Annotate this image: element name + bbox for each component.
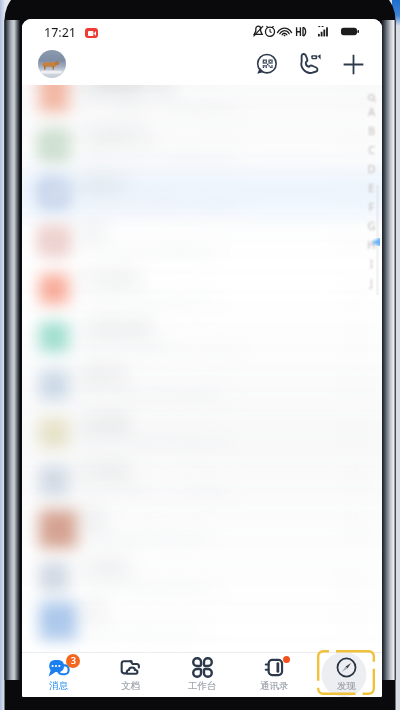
staticText: 文档 <box>121 680 140 692</box>
staticText: 通讯录 <box>260 680 289 692</box>
staticText: 3 <box>71 655 76 667</box>
button[interactable]: 发现 <box>310 652 382 697</box>
staticText: J <box>365 276 378 295</box>
staticText: I <box>365 257 378 276</box>
staticText: 发现 <box>337 680 356 692</box>
staticText: 消息 <box>49 680 68 692</box>
button[interactable]: 文档 <box>94 652 166 697</box>
button[interactable]: 公告通知 <box>22 553 382 601</box>
staticText: 17:21 <box>44 24 77 41</box>
button[interactable]: 审批助手 <box>22 361 382 409</box>
staticText: 会议纪要已经整理好发群里了 <box>79 625 209 638</box>
button[interactable]: 项目交流群（12） <box>22 85 382 121</box>
staticText: 稍后我回复您具体的内容好吗 <box>79 533 209 546</box>
staticText: 项目交流群（12） <box>79 85 181 97</box>
button[interactable]: Add <box>341 52 365 76</box>
staticText: D <box>365 162 378 181</box>
button[interactable]: Scan QR code <box>254 52 278 76</box>
staticText: 王强 <box>79 604 104 620</box>
staticText: F <box>365 200 378 219</box>
staticText: E <box>365 181 378 200</box>
staticText: C <box>365 143 378 162</box>
button[interactable]: Video call <box>298 52 322 76</box>
staticText: B <box>365 124 378 143</box>
staticText: A <box>365 105 378 124</box>
button[interactable]: 客户联系 <box>22 457 382 505</box>
staticText: 李娜 <box>79 512 104 528</box>
button[interactable]: 企业微信团队 <box>22 313 382 361</box>
button[interactable]: 张伟 <box>22 217 382 265</box>
button[interactable]: 产品研发中心 <box>22 121 382 169</box>
staticText: G <box>365 219 378 238</box>
button[interactable]: 通讯录 <box>238 652 310 697</box>
button[interactable]: Profile <box>38 50 66 78</box>
button[interactable]: 客户服务群 <box>22 265 382 313</box>
button[interactable]: 李娜 <box>22 505 382 553</box>
staticText: 工作台 <box>188 680 217 692</box>
button[interactable]: 日程提醒 <box>22 409 382 457</box>
button[interactable]: 标签助手 <box>22 169 382 217</box>
staticText: H <box>365 238 378 257</box>
button[interactable]: 工作台 <box>166 652 238 697</box>
button[interactable]: 王强 <box>22 601 382 640</box>
button[interactable]: 3 <box>22 652 94 697</box>
